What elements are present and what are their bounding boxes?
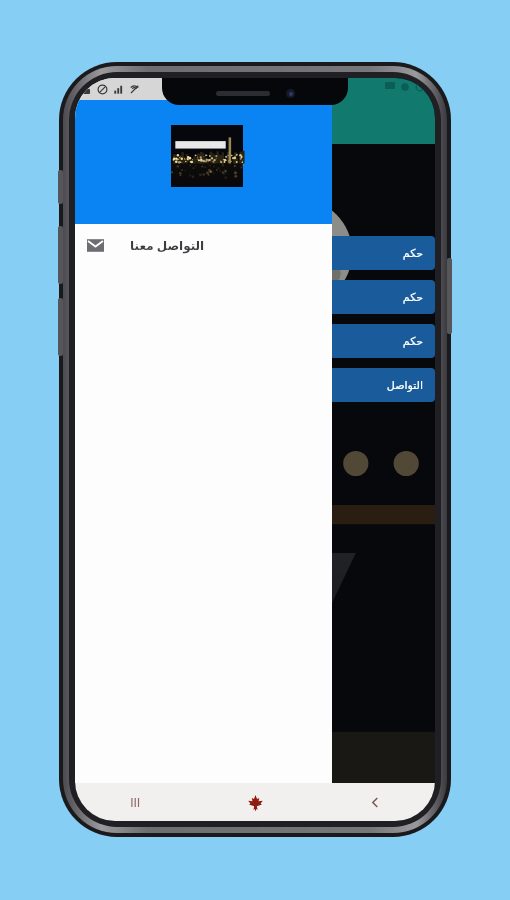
staticText: حكم	[402, 335, 423, 348]
staticText: التواصل	[386, 379, 423, 392]
staticText: التواصل معنا	[130, 237, 205, 253]
button[interactable]: حكم	[212, 280, 435, 314]
button[interactable]: حكم	[212, 324, 435, 358]
button[interactable]: Recent apps	[75, 783, 195, 821]
button[interactable]: Home	[195, 783, 315, 821]
button[interactable]: التواصل معنا	[75, 224, 332, 266]
staticText: حكم	[402, 291, 423, 304]
button[interactable]: التواصل	[212, 368, 435, 402]
button[interactable]: حكم	[212, 236, 435, 270]
button[interactable]: Back	[315, 783, 435, 821]
staticText: حكم	[402, 247, 423, 260]
